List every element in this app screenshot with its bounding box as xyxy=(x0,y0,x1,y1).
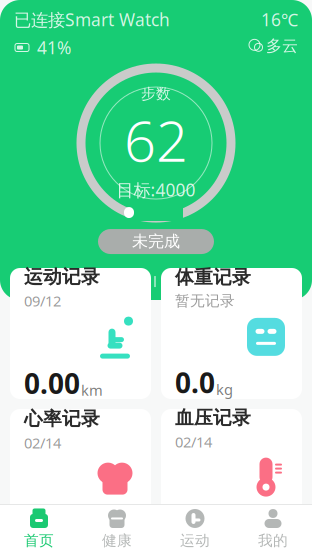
staticText: 里程 xyxy=(183,272,213,290)
button[interactable]: 未完成 xyxy=(98,229,214,254)
staticText: 未完成 xyxy=(132,232,180,251)
button[interactable]: 我的 xyxy=(234,505,312,553)
staticText: 0.04km xyxy=(219,270,279,293)
staticText: 目标:4000 xyxy=(116,178,195,201)
staticText: 多云 xyxy=(266,36,298,56)
staticText: 74 xyxy=(24,505,56,542)
button[interactable]: 血压记录 xyxy=(161,409,302,540)
staticText: 首页 xyxy=(24,531,54,549)
staticText: 血压记录 xyxy=(175,406,251,429)
button[interactable]: 体重记录 xyxy=(161,268,302,399)
staticText: 0.00 xyxy=(24,365,80,402)
staticText: 体重记录 xyxy=(175,266,251,289)
staticText: 我的 xyxy=(258,531,288,549)
staticText: 41% xyxy=(37,36,71,59)
staticText: kg xyxy=(216,380,233,399)
staticText: 62 xyxy=(124,103,188,177)
button[interactable]: 健康 xyxy=(78,505,156,553)
button[interactable]: 运动记录 xyxy=(10,268,151,399)
button[interactable]: 首页 xyxy=(0,505,78,553)
staticText: 16℃ xyxy=(261,8,298,31)
staticText: 2Kcal xyxy=(84,270,127,293)
staticText: 02/14 xyxy=(24,433,61,453)
staticText: 02/14 xyxy=(175,432,212,452)
staticText: 暂无记录 xyxy=(175,292,235,310)
staticText: 卡路里 xyxy=(33,272,78,290)
button[interactable]: 心率记录 xyxy=(10,409,151,540)
staticText: 77/116 xyxy=(175,506,267,543)
staticText: 运动 xyxy=(180,531,210,549)
staticText: 健康 xyxy=(102,531,132,549)
staticText: km xyxy=(81,380,103,400)
staticText: 心率记录 xyxy=(24,407,100,430)
button[interactable]: 运动 xyxy=(156,505,234,553)
staticText: 步数 xyxy=(141,85,171,103)
staticText: 09/12 xyxy=(24,291,61,311)
staticText: 0.0 xyxy=(175,364,215,401)
staticText: 运动记录 xyxy=(24,265,100,288)
staticText: 已连接Smart Watch xyxy=(14,8,170,31)
